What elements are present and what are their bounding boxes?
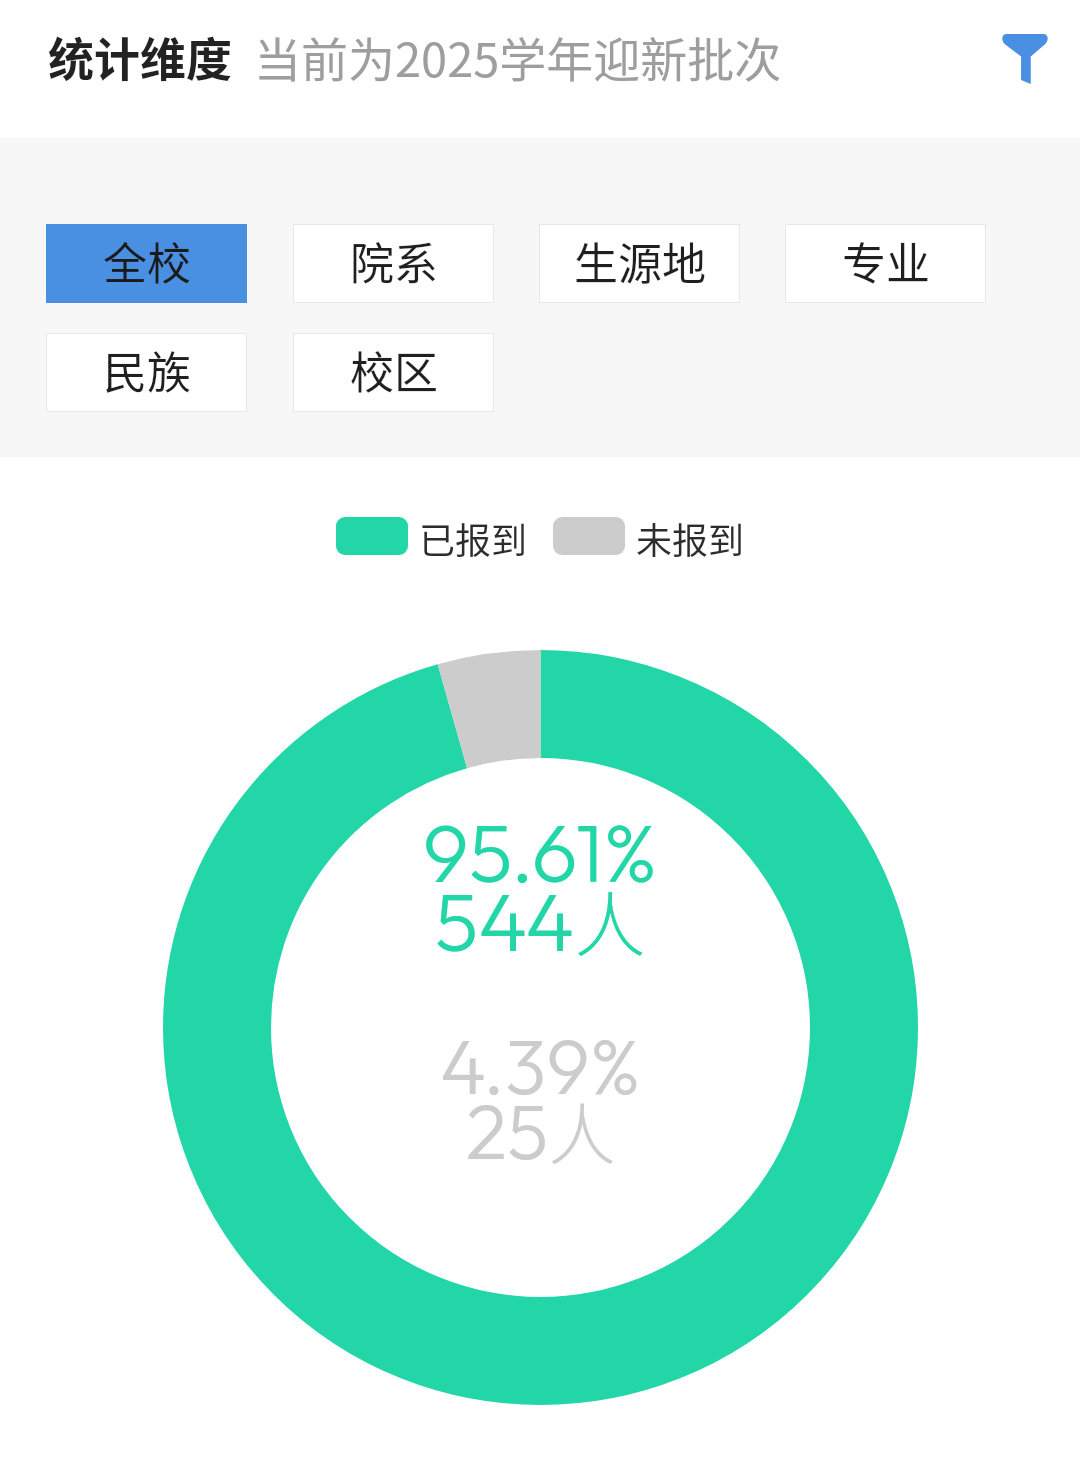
staticText: 生源地 [574, 229, 706, 293]
button[interactable]: 全校 [46, 224, 247, 303]
button[interactable]: 生源地 [539, 224, 740, 303]
button[interactable]: 民族 [46, 333, 247, 412]
staticText: 已报到 [419, 512, 528, 560]
button[interactable]: 院系 [293, 224, 494, 303]
staticText: 专业 [842, 229, 930, 293]
button[interactable]: 专业 [785, 224, 986, 303]
staticText: 未报到 [636, 512, 745, 560]
staticText: 95.61% 544人 [422, 800, 658, 973]
staticText: 全校 [103, 229, 191, 293]
staticText: 校区 [350, 338, 438, 402]
staticText: 院系 [350, 229, 438, 293]
button[interactable]: 校区 [293, 333, 494, 412]
staticText: 4.39% 25人 [440, 1017, 641, 1179]
staticText: 统计维度 [48, 23, 232, 90]
staticText: 民族 [103, 338, 191, 402]
staticText: 当前为2025学年迎新批次 [254, 22, 782, 90]
button[interactable]: Filter [1002, 34, 1048, 84]
